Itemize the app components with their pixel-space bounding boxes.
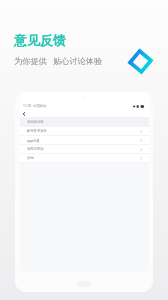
button[interactable]: app闪退 xyxy=(20,136,149,144)
button[interactable]: 帐号登录异常 xyxy=(20,127,149,135)
button[interactable]: 举报与投诉 xyxy=(20,145,149,153)
staticText: 其他 xyxy=(27,156,34,160)
staticText: 请选择问题 xyxy=(27,120,44,124)
staticText: 意见反馈 xyxy=(14,33,66,49)
staticText: 帐号登录异常 xyxy=(27,129,47,133)
button[interactable]: Back xyxy=(20,111,27,116)
staticText: 11:02 中国移动 xyxy=(23,103,47,108)
staticText: 举报与投诉 xyxy=(27,147,44,151)
staticText: 为你提供 xyxy=(14,56,47,66)
button[interactable]: 其他 xyxy=(20,154,149,162)
staticText: 贴心讨论体验 xyxy=(53,56,103,66)
staticText: app闪退 xyxy=(27,138,40,143)
